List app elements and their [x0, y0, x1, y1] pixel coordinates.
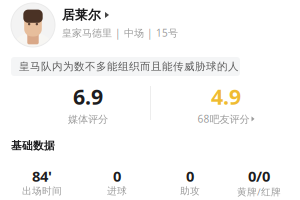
- staticText: 4.9: [211, 82, 241, 111]
- button[interactable]: 4.9: [152, 80, 300, 124]
- staticText: 基础数据: [11, 139, 55, 152]
- staticText: 进球: [107, 185, 127, 197]
- staticText: 皇马队内为数不多能组织而且能传威胁球的人: [19, 60, 239, 73]
- staticText: 0: [186, 166, 194, 186]
- staticText: 媒体评分: [68, 113, 108, 126]
- staticText: 0/0: [248, 166, 270, 186]
- staticText: 居莱尔: [62, 7, 101, 23]
- staticText: 0: [113, 166, 121, 186]
- staticText: 助攻: [180, 185, 200, 197]
- staticText: 皇家马德里 | 中场 | 15号: [62, 26, 178, 40]
- staticText: 黄牌/红牌: [237, 185, 281, 198]
- staticText: 6.9: [73, 82, 103, 111]
- button[interactable]: 居莱尔: [10, 2, 240, 48]
- staticText: 84': [32, 166, 52, 186]
- staticText: 出场时间: [22, 185, 62, 197]
- staticText: 68吧友评分: [197, 112, 249, 126]
